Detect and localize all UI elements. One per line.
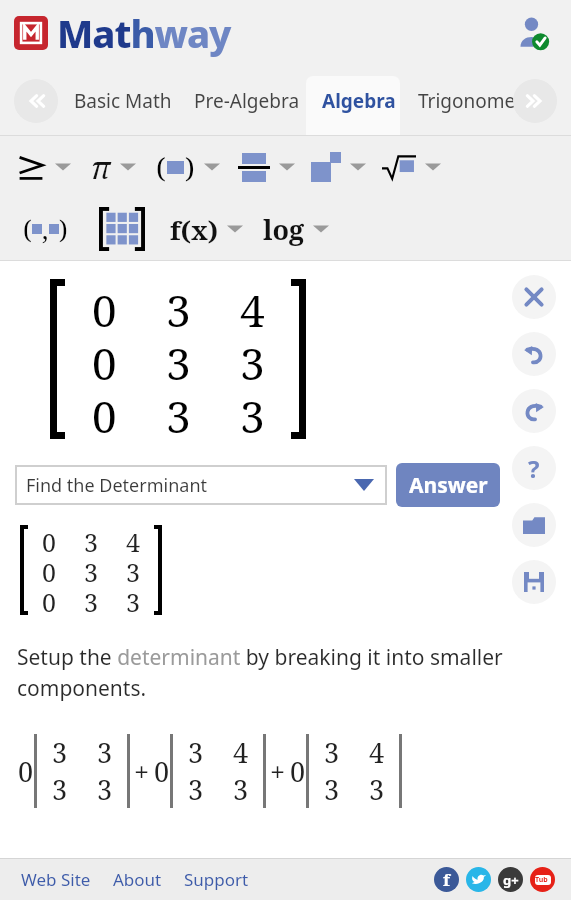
- button[interactable]: [306, 76, 400, 136]
- button[interactable]: Redo: [512, 389, 556, 433]
- staticText: 3: [188, 771, 204, 808]
- staticText: 3: [52, 771, 68, 808]
- staticText: +: [134, 753, 150, 790]
- button[interactable]: Algebra: [322, 66, 396, 136]
- staticText: 3: [369, 771, 385, 808]
- button[interactable]: Twitter: [466, 867, 491, 892]
- staticText: ): [185, 148, 195, 186]
- staticText: Find the Determinant: [26, 473, 208, 498]
- staticText: Basic Math: [74, 88, 172, 114]
- button[interactable]: Previous tabs: [14, 79, 58, 123]
- staticText: Tube: [535, 875, 551, 885]
- staticText: 0: [42, 525, 56, 555]
- staticText: 4: [233, 734, 249, 771]
- button[interactable]: Support: [178, 864, 255, 895]
- staticText: 4: [240, 280, 265, 333]
- staticText: 3: [240, 386, 265, 439]
- staticText: log: [263, 211, 305, 248]
- staticText: ,: [42, 212, 49, 246]
- button[interactable]: Pi: [91, 144, 136, 190]
- button[interactable]: log: [263, 206, 329, 252]
- staticText: 0: [92, 333, 117, 386]
- button[interactable]: Web Site: [15, 864, 97, 895]
- staticText: 0: [154, 753, 170, 790]
- staticText: 0: [42, 585, 56, 615]
- staticText: 3: [166, 280, 191, 333]
- staticText: ?: [528, 452, 540, 485]
- staticText: g+: [503, 871, 519, 889]
- button[interactable]: Square root: [382, 144, 441, 190]
- button[interactable]: Facebook: [434, 867, 459, 892]
- button[interactable]: Coordinate pair: [14, 206, 76, 252]
- button[interactable]: Close: [512, 275, 556, 319]
- staticText: 4: [126, 525, 140, 555]
- staticText: Pre-Algebra: [194, 88, 300, 114]
- button[interactable]: Account: [511, 11, 555, 55]
- button[interactable]: Matrix: [94, 204, 150, 254]
- staticText: Trigonomet: [418, 88, 523, 114]
- staticText: 3: [166, 333, 191, 386]
- staticText: 0: [18, 753, 34, 790]
- button[interactable]: Find the Determinant: [16, 466, 386, 504]
- button[interactable]: Next tabs: [513, 79, 557, 123]
- staticText: (: [23, 212, 32, 246]
- button[interactable]: Fraction: [238, 144, 295, 190]
- staticText: ): [59, 212, 68, 246]
- staticText: 3: [188, 734, 204, 771]
- staticText: 3: [97, 734, 113, 771]
- button[interactable]: About: [107, 864, 168, 895]
- staticText: 4: [369, 734, 385, 771]
- staticText: Mathway: [57, 7, 231, 59]
- button[interactable]: Exponent: [311, 144, 366, 190]
- button[interactable]: Pre-Algebra: [194, 66, 300, 136]
- staticText: Support: [184, 868, 249, 891]
- staticText: 3: [233, 771, 249, 808]
- staticText: (: [156, 148, 166, 186]
- staticText: 3: [97, 771, 113, 808]
- button[interactable]: Trigonomet: [418, 66, 523, 136]
- staticText: 3: [126, 555, 140, 585]
- button[interactable]: YouTube: [530, 867, 555, 892]
- staticText: 0: [290, 753, 306, 790]
- button[interactable]: Basic Math: [74, 66, 172, 136]
- button[interactable]: Answer: [396, 463, 500, 507]
- staticText: 3: [84, 555, 98, 585]
- staticText: 0: [92, 280, 117, 333]
- button[interactable]: Save: [512, 560, 556, 604]
- button[interactable]: Parentheses: [156, 144, 220, 190]
- staticText: Answer: [409, 471, 488, 500]
- staticText: 3: [126, 585, 140, 615]
- button[interactable]: Undo: [512, 332, 556, 376]
- staticText: 3: [84, 525, 98, 555]
- staticText: 3: [52, 734, 68, 771]
- staticText: 3: [240, 333, 265, 386]
- staticText: 3: [84, 585, 98, 615]
- button[interactable]: Open: [512, 503, 556, 547]
- staticText: 3: [166, 386, 191, 439]
- button[interactable]: f(x): [170, 206, 243, 252]
- button[interactable]: Google Plus: [498, 867, 523, 892]
- staticText: Algebra: [322, 88, 396, 114]
- staticText: π: [91, 147, 111, 188]
- button[interactable]: Help: [512, 446, 556, 490]
- staticText: f: [443, 868, 450, 891]
- staticText: Setup the determinant by breaking it int…: [17, 643, 554, 702]
- staticText: 0: [92, 386, 117, 439]
- staticText: +: [270, 753, 286, 790]
- staticText: 3: [324, 771, 340, 808]
- staticText: About: [113, 868, 162, 891]
- staticText: Web Site: [21, 868, 91, 891]
- staticText: 0: [42, 555, 56, 585]
- button[interactable]: Inequality: [16, 144, 71, 190]
- staticText: 3: [324, 734, 340, 771]
- staticText: f(x): [170, 212, 219, 247]
